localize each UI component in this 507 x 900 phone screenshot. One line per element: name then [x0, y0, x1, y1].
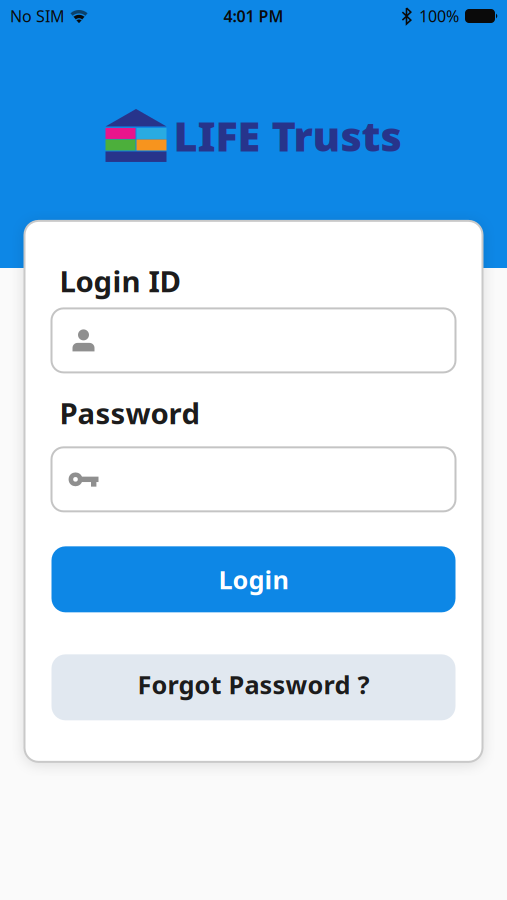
button[interactable]: Forgot Password ?	[51, 654, 455, 720]
button[interactable]	[51, 447, 455, 511]
staticText: Login	[218, 562, 288, 596]
staticText: Forgot Password ?	[137, 667, 369, 701]
staticText: Login ID	[59, 261, 180, 300]
staticText: LIFE Trusts	[173, 108, 401, 163]
staticText: 100%	[419, 5, 459, 27]
button[interactable]: Login	[51, 546, 455, 612]
staticText: No SIM	[10, 5, 65, 27]
staticText: Password	[59, 393, 200, 432]
staticText: 4:01 PM	[223, 5, 283, 27]
button[interactable]	[51, 308, 455, 372]
